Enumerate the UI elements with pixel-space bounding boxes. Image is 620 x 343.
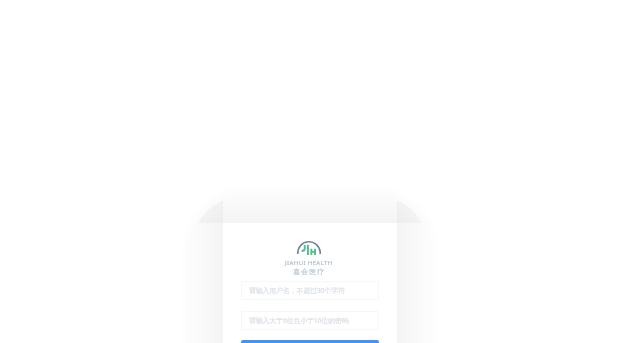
staticText: 嘉 会 医 疗 <box>293 267 325 277</box>
staticText: 请输入大于6位且小于16位的密码 <box>249 316 349 326</box>
staticText: JIAHUI HEALTH <box>285 259 333 267</box>
button[interactable]: 登 录 <box>241 340 379 343</box>
button[interactable]: 请输入用户名，不超过30个字符 <box>241 281 379 300</box>
staticText: 请输入用户名，不超过30个字符 <box>249 286 345 296</box>
other: Jiahui Health logo <box>297 241 321 257</box>
button[interactable]: 请输入大于6位且小于16位的密码 <box>241 311 379 330</box>
